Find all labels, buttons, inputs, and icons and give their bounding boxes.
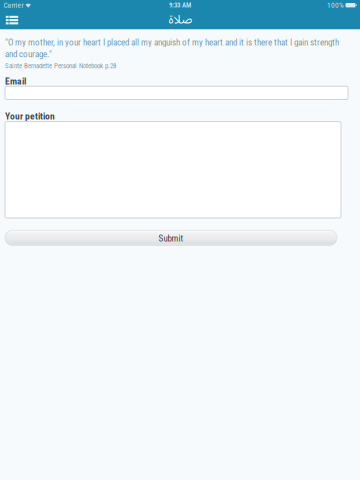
staticText: Submit — [158, 233, 183, 244]
button[interactable]: Menu — [0, 10, 25, 29]
staticText: صلاة — [168, 7, 192, 32]
staticText: 100% — [327, 1, 344, 9]
staticText: Your petition — [5, 110, 55, 122]
staticText: Sainte Bernadette Personal Notebook p.28 — [5, 62, 116, 70]
staticText: 9:33 AM — [169, 1, 191, 9]
staticText: Email — [5, 76, 26, 87]
staticText: "O my mother, in your heart I placed all… — [5, 37, 339, 59]
staticText: Carrier — [4, 1, 24, 9]
button[interactable]: Submit — [5, 230, 337, 245]
